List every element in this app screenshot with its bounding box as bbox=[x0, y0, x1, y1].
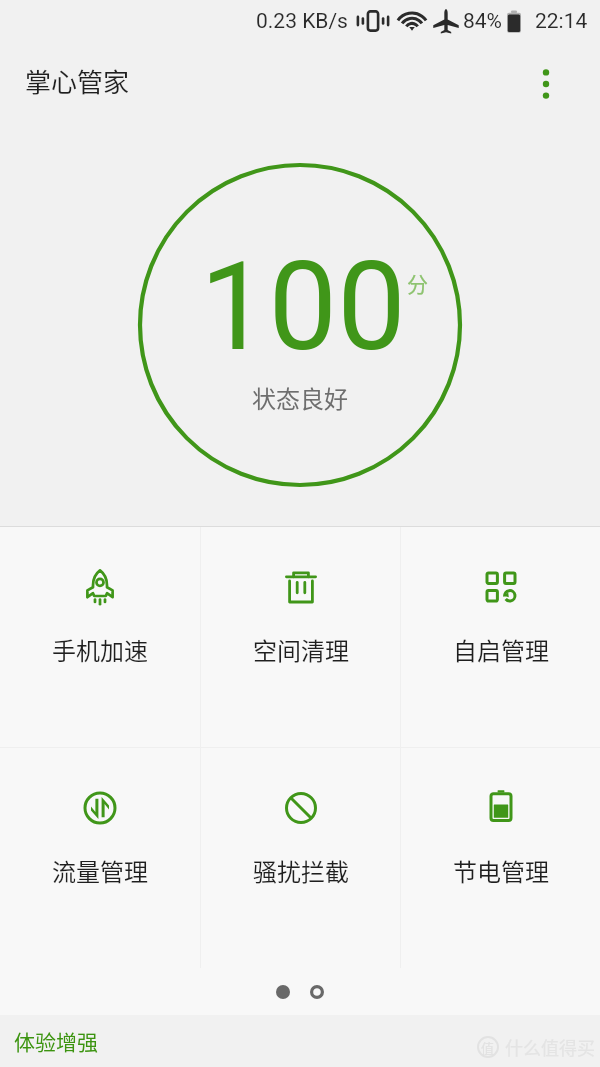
staticText: 值 bbox=[481, 1038, 495, 1057]
staticText: 0.23 KB/s bbox=[256, 9, 348, 34]
staticText: 体验增强 bbox=[14, 1026, 98, 1056]
staticText: 状态良好 bbox=[252, 380, 348, 415]
staticText: 掌心管家 bbox=[25, 62, 130, 100]
button[interactable]: 流量管理 bbox=[0, 748, 200, 888]
staticText: 手机加速 bbox=[52, 632, 148, 667]
staticText: 空间清理 bbox=[253, 632, 349, 667]
staticText: 22:14 bbox=[535, 9, 588, 34]
button[interactable]: 空间清理 bbox=[201, 527, 400, 667]
staticText: 84% bbox=[463, 9, 502, 34]
button[interactable]: Page 2 bbox=[307, 982, 327, 1002]
button[interactable]: 骚扰拦截 bbox=[201, 748, 400, 888]
button[interactable]: 手机加速 bbox=[0, 527, 200, 667]
button[interactable]: More options bbox=[524, 59, 568, 103]
staticText: 流量管理 bbox=[52, 853, 148, 888]
button[interactable]: 节电管理 bbox=[401, 748, 600, 888]
staticText: 节电管理 bbox=[453, 853, 549, 888]
staticText: 自启管理 bbox=[453, 632, 549, 667]
staticText: 什么值得买 bbox=[505, 1034, 595, 1060]
button[interactable]: 体验增强 bbox=[0, 1015, 116, 1067]
button[interactable]: Page 1 bbox=[273, 982, 293, 1002]
button[interactable]: 自启管理 bbox=[401, 527, 600, 667]
staticText: 分 bbox=[407, 268, 428, 298]
staticText: 100 bbox=[200, 236, 406, 379]
staticText: 骚扰拦截 bbox=[253, 853, 349, 888]
